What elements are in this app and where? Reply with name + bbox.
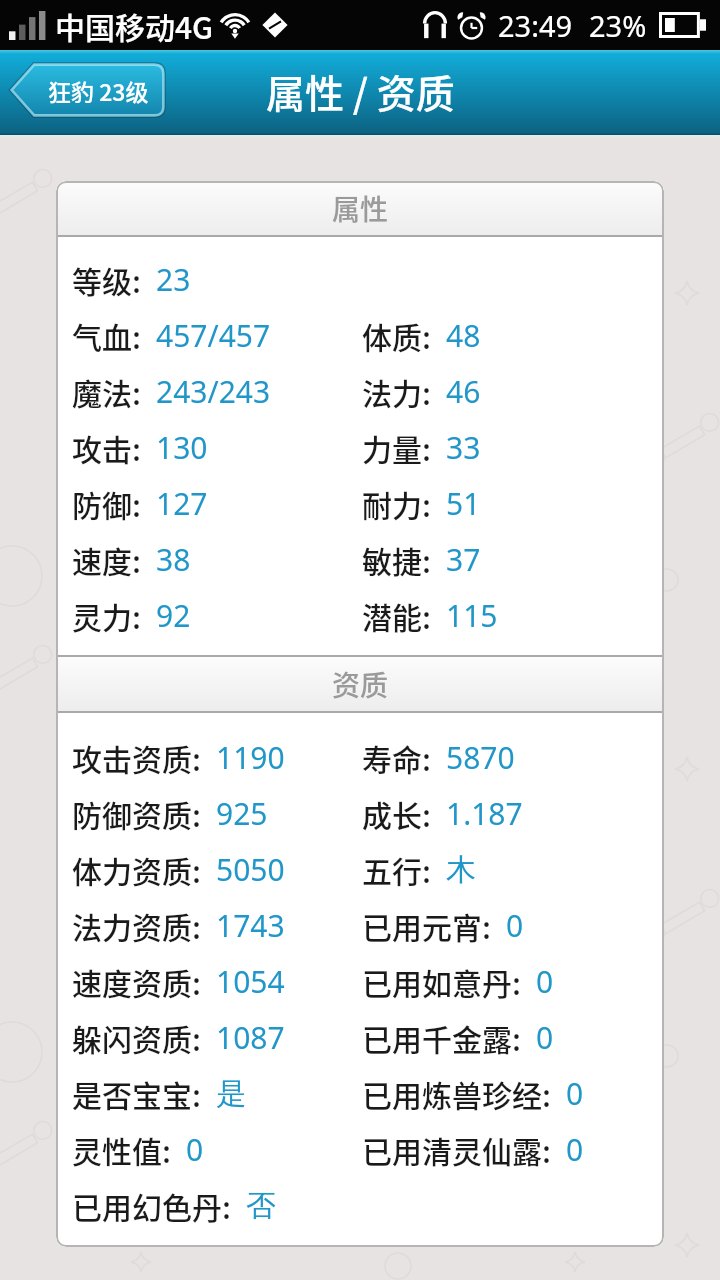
staticText: 1087 [216,1017,285,1058]
staticText: : [132,482,141,525]
staticText: : [192,848,201,891]
staticText: 1190 [216,737,285,778]
staticText: 灵性值 [72,1128,162,1171]
staticText: 已用如意丹 [362,960,512,1003]
staticText: : [422,848,431,891]
staticText: 成长 [362,792,422,835]
staticText: 23 [156,259,191,300]
staticText: : [422,370,431,413]
staticText: 属性 / 资质 [266,63,455,119]
staticText: 48 [446,315,481,356]
staticText: 五行 [362,848,422,891]
staticText: 127 [156,483,208,524]
staticText: : [422,594,431,637]
staticText: 已用炼兽珍经 [362,1072,542,1115]
staticText: 资质 [332,664,389,705]
staticText: : [422,538,431,581]
staticText: 已用清灵仙露 [362,1128,542,1171]
staticText: 体质 [362,314,422,357]
staticText: : [132,538,141,581]
staticText: 寿命 [362,736,422,779]
staticText: : [132,258,141,301]
staticText: 已用元宵 [362,904,482,947]
staticText: : [192,1072,201,1115]
button[interactable]: 返回 狂豹 23级 [10,62,166,122]
staticText: 0 [566,1129,584,1170]
staticText: 33 [446,427,481,468]
staticText: 1054 [216,961,285,1002]
staticText: : [192,904,201,947]
staticText: 属性 [332,188,389,229]
staticText: 速度 [72,538,132,581]
staticText: : [422,426,431,469]
staticText: 体力资质 [72,848,192,891]
staticText: : [192,1016,201,1059]
staticText: 925 [216,793,268,834]
staticText: : [162,1128,171,1171]
staticText: 魔法 [72,370,132,413]
staticText: : [512,960,521,1003]
staticText: 23% [589,6,647,45]
staticText: 115 [446,595,498,636]
staticText: 躲闪资质 [72,1016,192,1059]
staticText: 457/457 [156,315,271,356]
staticText: 气血 [72,314,132,357]
staticText: 速度资质 [72,960,192,1003]
staticText: 法力资质 [72,904,192,947]
staticText: 1743 [216,905,285,946]
staticText: 0 [566,1073,584,1114]
staticText: : [512,1016,521,1059]
staticText: 灵力 [72,594,132,637]
staticText: : [422,792,431,835]
staticText: 法力 [362,370,422,413]
staticText: : [192,960,201,1003]
staticText: 已用千金露 [362,1016,512,1059]
staticText: 130 [156,427,208,468]
staticText: 是 [216,1075,246,1113]
staticText: 狂豹 23级 [48,74,149,107]
staticText: : [132,314,141,357]
staticText: 0 [186,1129,204,1170]
staticText: : [422,736,431,779]
staticText: 0 [536,961,554,1002]
staticText: : [542,1128,551,1171]
staticText: 木 [446,851,476,889]
staticText: : [132,426,141,469]
staticText: : [422,482,431,525]
staticText: : [132,370,141,413]
staticText: 5050 [216,849,285,890]
staticText: 等级 [72,258,132,301]
staticText: : [222,1184,231,1227]
staticText: 中国移动4G [55,4,214,47]
staticText: : [422,314,431,357]
staticText: 243/243 [156,371,271,412]
staticText: 否 [246,1187,276,1225]
staticText: 37 [446,539,481,580]
staticText: 46 [446,371,481,412]
staticText: 攻击 [72,426,132,469]
staticText: 92 [156,595,191,636]
staticText: 攻击资质 [72,736,192,779]
staticText: : [482,904,491,947]
staticText: : [192,736,201,779]
staticText: 防御 [72,482,132,525]
staticText: : [132,594,141,637]
staticText: : [542,1072,551,1115]
staticText: 1.187 [446,793,523,834]
staticText: 38 [156,539,191,580]
staticText: 力量 [362,426,422,469]
staticText: 51 [446,483,481,524]
staticText: 耐力 [362,482,422,525]
staticText: 防御资质 [72,792,192,835]
staticText: 潜能 [362,594,422,637]
staticText: 敏捷 [362,538,422,581]
staticText: 23:49 [498,6,573,45]
staticText: 0 [536,1017,554,1058]
staticText: 0 [506,905,524,946]
staticText: 5870 [446,737,515,778]
staticText: 已用幻色丹 [72,1184,222,1227]
staticText: 是否宝宝 [72,1072,192,1115]
staticText: : [192,792,201,835]
